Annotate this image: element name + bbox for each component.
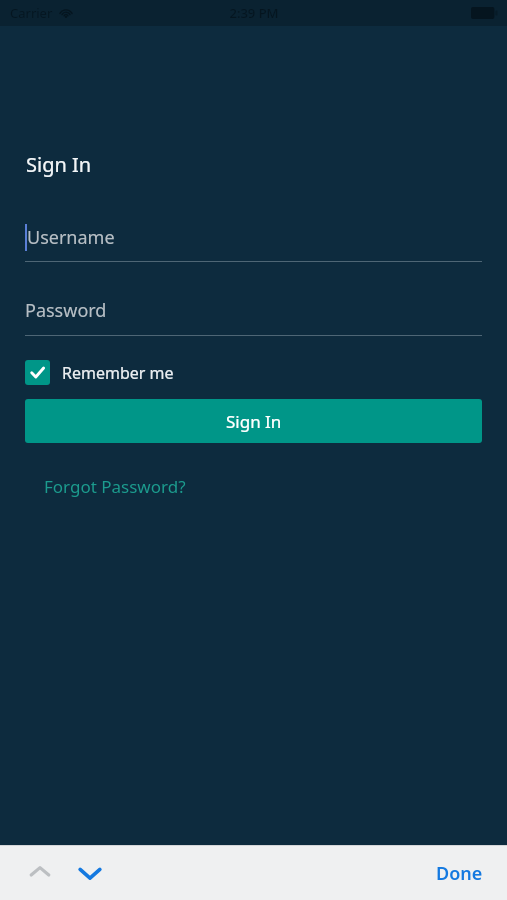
button[interactable]: Forgot Password? [44,475,186,498]
staticText: Remember me [62,362,174,384]
button[interactable]: Sign In [25,399,482,443]
staticText: Forgot Password? [44,475,186,498]
button[interactable]: Done [430,855,489,892]
staticText: Sign In [26,151,92,178]
staticText: Password [25,298,107,323]
staticText: Sign In [226,410,282,433]
button[interactable]: Username [0,224,507,262]
button[interactable]: Previous field [22,855,58,891]
button[interactable]: Password [0,298,507,336]
staticText: Username [27,225,115,250]
staticText: Carrier [10,4,53,22]
button[interactable]: Next field [72,855,108,891]
staticText: 2:39 PM [229,4,279,22]
staticText: Done [436,861,483,886]
button[interactable]: Remember me [25,360,174,385]
